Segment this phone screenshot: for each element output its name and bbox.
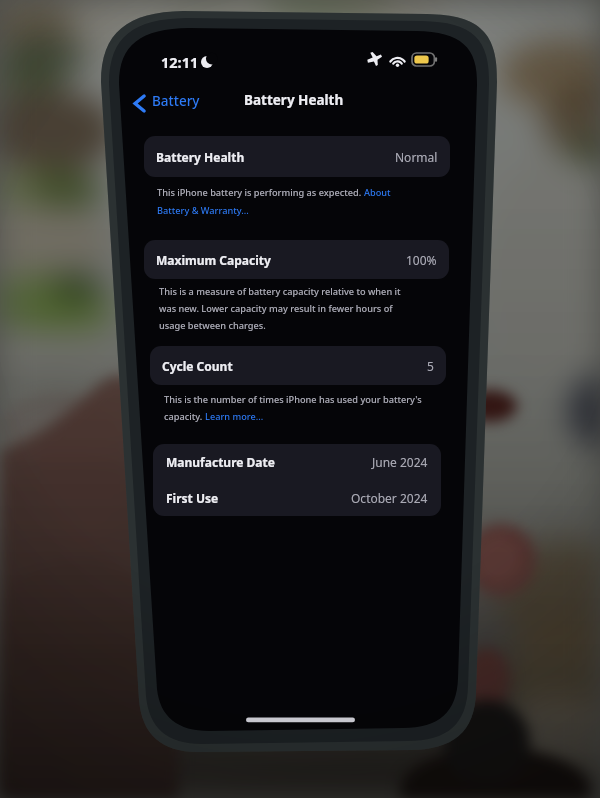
staticText: Cycle Count [162, 358, 233, 374]
staticText: Battery [152, 92, 200, 110]
button[interactable]: Battery & Warranty... [157, 204, 249, 217]
button[interactable]: Back [134, 94, 200, 112]
staticText: Manufacture Date [166, 454, 275, 470]
staticText: usage between charges. [159, 319, 266, 332]
button[interactable]: Maximum Capacity [144, 240, 449, 279]
staticText: capacity. [164, 410, 205, 423]
button[interactable]: Learn more... [205, 410, 264, 423]
staticText: This is a measure of battery capacity re… [159, 285, 401, 298]
button[interactable]: About [364, 186, 391, 199]
staticText: 5 [427, 358, 434, 374]
other: Back [134, 95, 145, 112]
staticText: This iPhone battery is performing as exp… [157, 186, 364, 199]
staticText: Battery Health [244, 91, 344, 109]
button[interactable]: First Use [153, 480, 441, 516]
staticText: October 2024 [351, 490, 428, 506]
staticText: Battery Health [156, 149, 245, 165]
staticText: First Use [166, 490, 219, 506]
staticText: Maximum Capacity [156, 252, 271, 268]
staticText: June 2024 [372, 454, 428, 470]
staticText: was new. Lower capacity may result in fe… [159, 302, 393, 315]
button[interactable]: Cycle Count [150, 346, 446, 385]
staticText: This is the number of times iPhone has u… [164, 393, 422, 406]
button[interactable]: Battery Health [144, 136, 450, 177]
staticText: Normal [395, 149, 438, 165]
button[interactable]: Manufacture Date [153, 444, 441, 480]
staticText: 12:11 [161, 52, 199, 72]
staticText: 100% [406, 252, 437, 268]
